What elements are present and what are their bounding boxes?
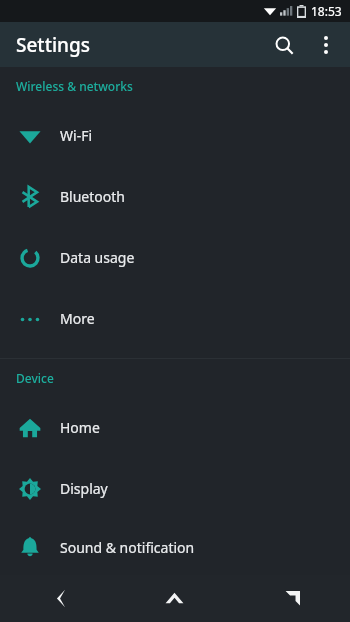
staticText: Wi-Fi xyxy=(60,126,93,145)
staticText: Sound & notification xyxy=(60,538,195,557)
staticText: Settings xyxy=(16,32,90,58)
staticText: Home xyxy=(60,418,100,437)
staticText: 18:53 xyxy=(311,3,342,19)
button[interactable]: Home xyxy=(0,397,350,458)
staticText: Device xyxy=(16,370,54,386)
button[interactable]: Bluetooth xyxy=(0,166,350,227)
button[interactable]: Sound & notification xyxy=(0,519,350,575)
button[interactable]: Wi-Fi xyxy=(0,105,350,166)
staticText: Bluetooth xyxy=(60,187,125,206)
staticText: Wireless & networks xyxy=(16,78,133,94)
button[interactable]: Display xyxy=(0,458,350,519)
button[interactable]: Recent apps xyxy=(233,575,350,622)
button[interactable]: More options xyxy=(306,25,346,65)
staticText: Display xyxy=(60,479,108,498)
staticText: Data usage xyxy=(60,248,135,267)
button[interactable]: Data usage xyxy=(0,227,350,288)
button[interactable]: Back xyxy=(0,575,116,622)
button[interactable]: Search xyxy=(262,23,306,67)
button[interactable]: More xyxy=(0,288,350,349)
button[interactable]: Home xyxy=(116,575,233,622)
staticText: More xyxy=(60,309,95,328)
